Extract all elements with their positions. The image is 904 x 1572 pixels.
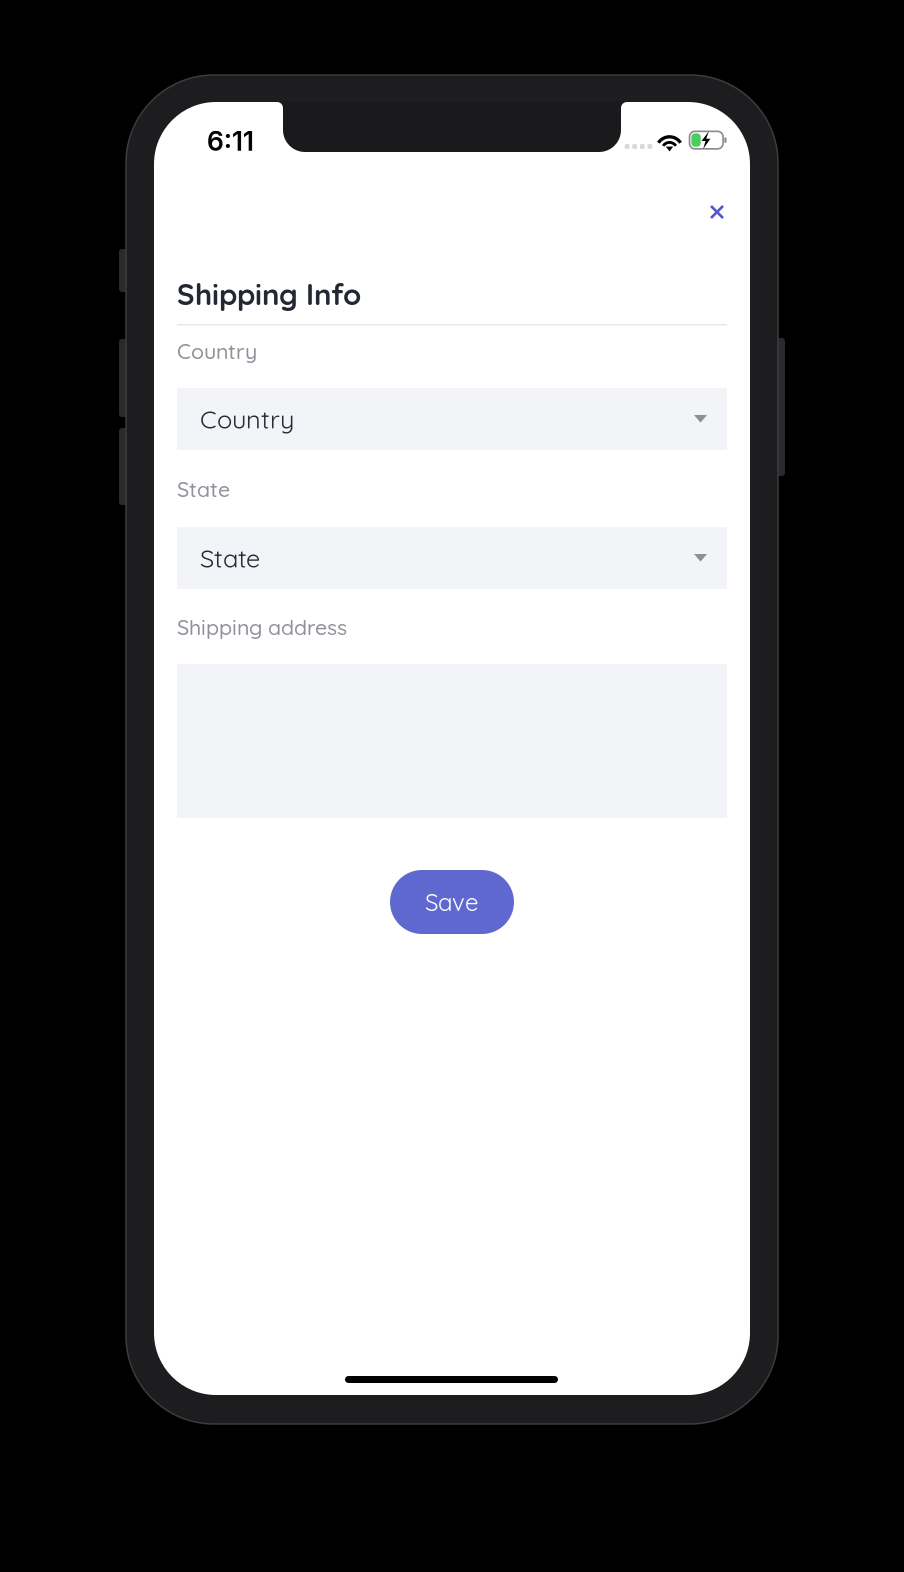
staticText: Country [177,338,257,364]
button[interactable]: Save [390,870,514,934]
staticText: Shipping address [177,614,347,640]
staticText: Country [200,403,294,435]
staticText: State [177,476,230,502]
button[interactable]: State [177,527,727,589]
staticText: State [200,542,260,574]
staticText: 6:11 [207,125,254,157]
button[interactable]: Country [177,388,727,450]
button[interactable]: Close [695,190,739,234]
staticText: Shipping Info [177,276,361,312]
staticText: Save [425,887,479,917]
